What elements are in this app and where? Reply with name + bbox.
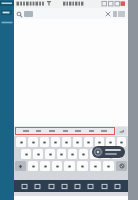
button[interactable]: r	[51, 137, 60, 147]
other: q	[20, 141, 23, 144]
button[interactable]: Screenshot	[73, 182, 82, 191]
button[interactable]: f	[57, 149, 66, 159]
button[interactable]: n	[90, 161, 101, 171]
other: r	[54, 141, 57, 144]
other: b	[81, 165, 84, 168]
button[interactable]	[1, 10, 12, 15]
button[interactable]: Return	[116, 127, 127, 135]
button[interactable]: d	[45, 149, 55, 159]
button[interactable]: Keyboard layout	[20, 182, 29, 191]
other: f	[60, 153, 63, 156]
other: g	[71, 153, 74, 156]
button[interactable]: y	[73, 137, 82, 147]
button[interactable]: Rotate	[86, 182, 95, 191]
button[interactable]	[0, 1, 14, 6]
button[interactable]: k	[101, 149, 110, 159]
button[interactable]: p	[117, 137, 126, 147]
other: m	[107, 165, 110, 168]
button[interactable]: a	[21, 149, 31, 159]
button[interactable]: z	[28, 161, 38, 171]
other: i	[98, 141, 101, 144]
button[interactable]: Zoom	[60, 182, 69, 191]
button[interactable]: h	[79, 149, 88, 159]
button[interactable]: Clear search	[103, 9, 112, 18]
other: p	[120, 141, 123, 144]
button[interactable]: m	[103, 161, 114, 171]
button[interactable]: Search options	[113, 11, 125, 17]
button[interactable]: o	[106, 137, 115, 147]
button[interactable]: i	[95, 137, 104, 147]
other: x	[44, 165, 47, 168]
button[interactable]: w	[28, 137, 38, 147]
button[interactable]: s	[33, 149, 43, 159]
button[interactable]: l	[112, 149, 121, 159]
button[interactable]: More	[100, 182, 109, 191]
button[interactable]: c	[52, 161, 62, 171]
other: u	[87, 141, 90, 144]
other: w	[32, 141, 35, 144]
button[interactable]: Search field	[16, 10, 33, 18]
other: a	[25, 153, 28, 156]
button[interactable]: x	[40, 161, 50, 171]
other: z	[32, 165, 35, 168]
button[interactable]: Panel	[113, 182, 122, 191]
other: s	[37, 153, 40, 156]
other: t	[65, 141, 68, 144]
button[interactable]: u	[84, 137, 93, 147]
button[interactable]: b	[77, 161, 88, 171]
button[interactable]: g	[68, 149, 77, 159]
other: c	[56, 165, 59, 168]
other: y	[76, 141, 79, 144]
other: e	[43, 141, 46, 144]
button[interactable]: q	[16, 137, 26, 147]
button[interactable]: j	[90, 149, 99, 159]
button[interactable]: Notification	[92, 146, 125, 158]
button[interactable]: Settings	[47, 182, 56, 191]
other: l	[115, 153, 118, 156]
other: j	[93, 153, 96, 156]
button[interactable]: Shift	[15, 161, 26, 171]
button[interactable]: Backspace	[116, 161, 127, 171]
other: d	[49, 153, 52, 156]
other: o	[109, 141, 112, 144]
other: h	[82, 153, 85, 156]
button[interactable]: v	[64, 161, 75, 171]
button[interactable]: t	[62, 137, 71, 147]
button[interactable]: e	[40, 137, 49, 147]
other: k	[104, 153, 107, 156]
button[interactable]: Window	[33, 182, 42, 191]
button[interactable]: Suggestions	[15, 127, 115, 135]
other: n	[94, 165, 97, 168]
other: v	[68, 165, 71, 168]
